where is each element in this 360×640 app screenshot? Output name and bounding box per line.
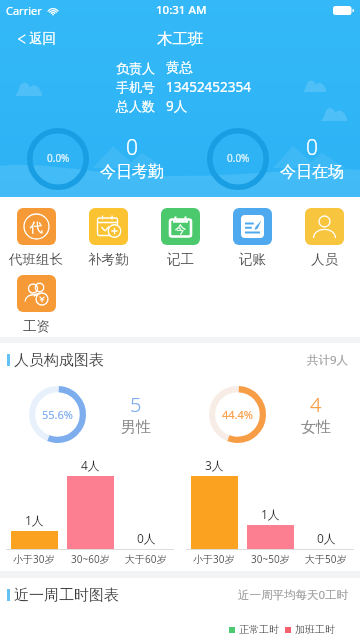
staticText: 补考勤: [88, 251, 129, 268]
button[interactable]: 0.0%: [180, 128, 360, 190]
staticText: 3人: [205, 457, 224, 473]
staticText: 手机号: [116, 79, 155, 95]
staticText: 1人: [25, 512, 44, 528]
staticText: 1人: [261, 506, 280, 522]
staticText: 今: [175, 222, 186, 236]
staticText: 代: [30, 219, 43, 235]
staticText: 返回: [29, 30, 56, 47]
button[interactable]: 0.0%: [0, 128, 180, 190]
staticText: 负责人: [116, 60, 155, 76]
button[interactable]: 人员: [288, 208, 360, 275]
staticText: 共计9人: [307, 352, 349, 368]
staticText: 30~60岁: [71, 552, 110, 566]
staticText: 0.0%: [47, 151, 70, 165]
staticText: 近一周工时图表: [14, 586, 119, 605]
staticText: 0人: [137, 530, 156, 546]
staticText: 黄总: [166, 59, 193, 76]
staticText: 4人: [81, 457, 100, 473]
staticText: 55.6%: [42, 407, 73, 422]
button[interactable]: 代: [0, 208, 72, 275]
button[interactable]: 今: [144, 208, 216, 275]
staticText: 0.0%: [227, 151, 250, 165]
staticText: 今日考勤: [100, 162, 164, 182]
staticText: 加班工时: [295, 623, 335, 636]
staticText: 5: [130, 391, 142, 418]
staticText: 人员构成图表: [14, 351, 104, 370]
button[interactable]: 工资: [0, 275, 72, 337]
staticText: 代班组长: [9, 251, 63, 268]
staticText: 记工: [167, 251, 194, 268]
staticText: 工资: [23, 318, 50, 335]
button[interactable]: 记账: [216, 208, 288, 275]
staticText: 4: [310, 391, 322, 418]
staticText: 44.4%: [222, 407, 253, 422]
staticText: Carrier: [6, 3, 42, 18]
staticText: 30~50岁: [251, 552, 290, 566]
staticText: 9人: [166, 97, 188, 115]
button[interactable]: 返回: [14, 27, 60, 50]
staticText: 近一周平均每天0工时: [238, 587, 349, 603]
staticText: 大于60岁: [125, 552, 167, 566]
staticText: 0: [306, 133, 318, 162]
staticText: 小于30岁: [193, 552, 235, 566]
button[interactable]: 正常工时: [229, 623, 279, 636]
staticText: 大于50岁: [305, 552, 347, 566]
staticText: 女性: [301, 418, 331, 437]
staticText: 正常工时: [239, 623, 279, 636]
button[interactable]: 加班工时: [285, 623, 335, 636]
staticText: 13452452354: [166, 78, 251, 96]
button[interactable]: 补考勤: [72, 208, 144, 275]
staticText: 总人数: [116, 98, 155, 114]
staticText: 小于30岁: [13, 552, 55, 566]
staticText: 男性: [121, 418, 151, 437]
staticText: 木工班: [157, 29, 204, 49]
staticText: 10:31 AM: [156, 2, 207, 18]
staticText: 今日在场: [280, 162, 344, 182]
staticText: 0人: [317, 530, 336, 546]
staticText: 人员: [311, 251, 338, 268]
staticText: 记账: [239, 251, 266, 268]
staticText: 0: [126, 133, 138, 162]
